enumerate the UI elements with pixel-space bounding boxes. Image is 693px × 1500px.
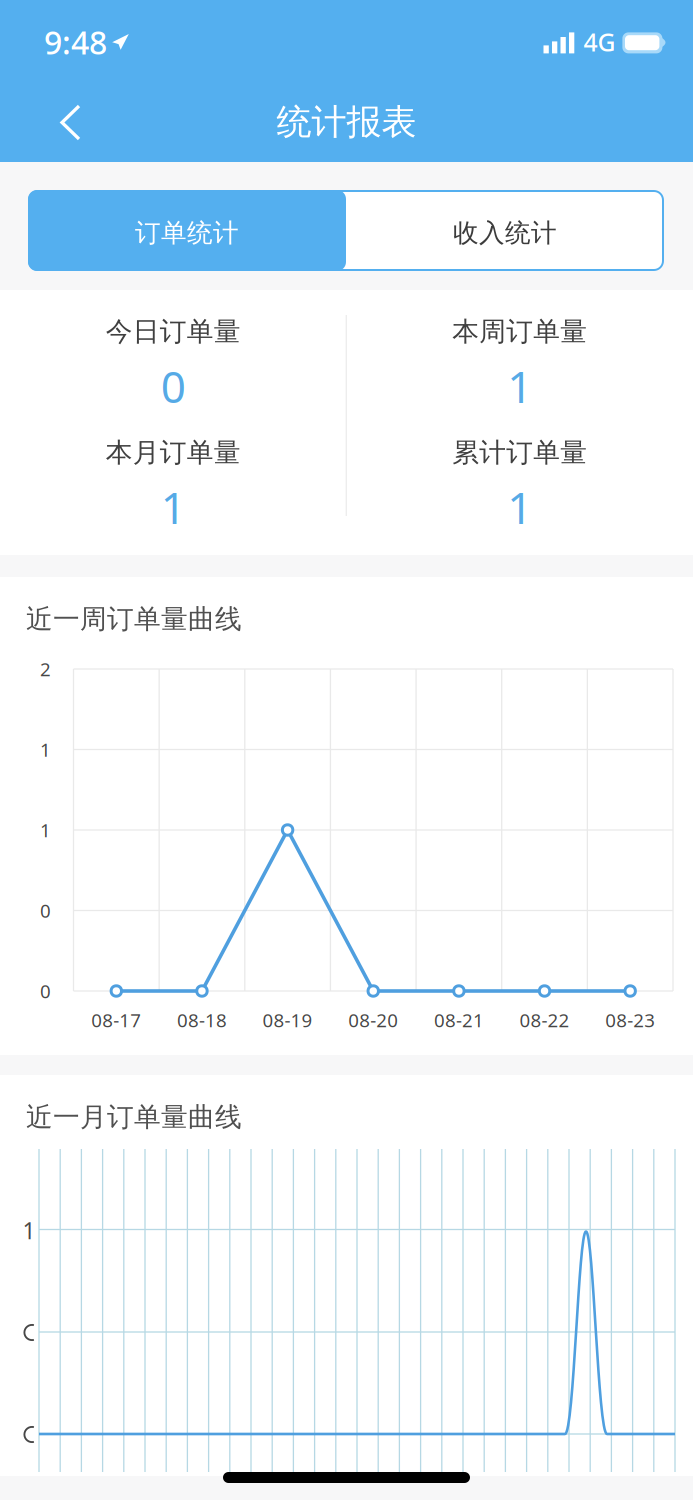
- staticText: 08-21: [434, 1007, 484, 1033]
- staticText: 0: [40, 978, 51, 1004]
- button[interactable]: 收入统计: [346, 190, 664, 271]
- staticText: 近一周订单量曲线: [26, 602, 242, 636]
- staticText: 本月订单量: [106, 436, 241, 469]
- staticText: 累计订单量: [452, 436, 587, 469]
- staticText: 订单统计: [135, 217, 239, 249]
- staticText: 近一月订单量曲线: [26, 1100, 242, 1134]
- staticText: 08-23: [605, 1007, 655, 1033]
- staticText: 1: [40, 737, 51, 762]
- staticText: 今日订单量: [106, 315, 241, 348]
- staticText: 08-17: [91, 1007, 141, 1033]
- staticText: 08-19: [263, 1007, 313, 1033]
- button[interactable]: Back: [0, 80, 109, 162]
- staticText: 08-22: [519, 1007, 569, 1033]
- staticText: 1: [22, 1215, 35, 1246]
- staticText: 1: [507, 477, 532, 537]
- staticText: 2: [40, 656, 51, 682]
- staticText: 9:48: [44, 20, 107, 64]
- staticText: 1: [40, 817, 51, 843]
- staticText: 4G: [584, 25, 616, 59]
- staticText: 收入统计: [453, 217, 557, 249]
- staticText: 1: [507, 356, 532, 416]
- staticText: 1: [161, 477, 186, 537]
- button[interactable]: 订单统计: [28, 190, 346, 271]
- staticText: 本周订单量: [452, 315, 587, 348]
- staticText: 统计报表: [276, 100, 416, 144]
- staticText: 08-20: [348, 1007, 398, 1033]
- staticText: 0: [40, 898, 51, 923]
- staticText: 0: [161, 356, 186, 416]
- staticText: 08-18: [177, 1007, 227, 1033]
